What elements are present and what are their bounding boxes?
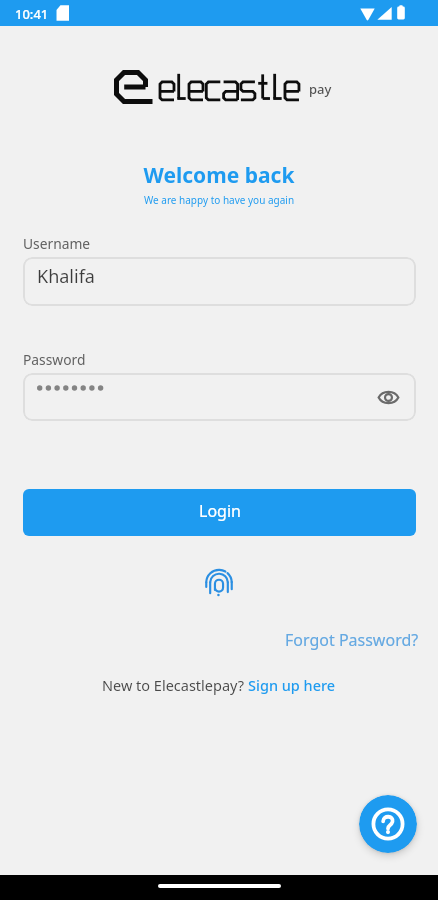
button[interactable]: Help [359, 795, 417, 853]
staticText: Khalifa [37, 264, 95, 289]
button[interactable]: Show password [23, 373, 416, 421]
staticText: Password [23, 350, 86, 369]
staticText: Login [199, 500, 241, 522]
button[interactable]: Show password [371, 380, 405, 414]
staticText: Welcome back [0, 161, 438, 190]
button[interactable]: Forgot Password? [281, 625, 423, 655]
button[interactable]: New to Elecastlepay? [99, 672, 339, 698]
staticText: Username [23, 234, 91, 253]
staticText: New to Elecastlepay? [102, 675, 248, 695]
button[interactable]: Khalifa [23, 257, 416, 306]
button[interactable]: Home [158, 884, 281, 888]
staticText: pay [309, 80, 332, 98]
staticText: Sign up here [248, 675, 336, 695]
button[interactable]: Fingerprint login [199, 562, 239, 602]
staticText: Forgot Password? [285, 629, 419, 651]
staticText: We are happy to have you again [0, 193, 438, 207]
staticText: 10:41 [15, 5, 49, 23]
button[interactable]: Login [23, 489, 416, 536]
